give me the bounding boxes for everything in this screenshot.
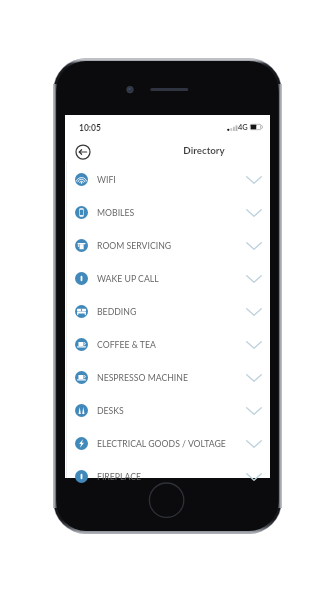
staticText: ROOM SERVICING: [97, 240, 172, 250]
button[interactable]: ROOM SERVICING: [65, 229, 270, 262]
staticText: ELECTRICAL GOODS / VOLTAGE: [97, 438, 226, 448]
button[interactable]: DESKS: [65, 394, 270, 427]
button[interactable]: Back: [73, 142, 92, 161]
staticText: WAKE UP CALL: [97, 273, 159, 283]
staticText: DESKS: [97, 405, 124, 415]
staticText: MOBILES: [97, 207, 135, 217]
staticText: FIREPLACE: [97, 471, 142, 481]
button[interactable]: BEDDING: [65, 295, 270, 328]
staticText: WIFI: [97, 174, 116, 184]
button[interactable]: WAKE UP CALL: [65, 262, 270, 295]
button[interactable]: ELECTRICAL GOODS / VOLTAGE: [65, 427, 270, 460]
staticText: COFFEE & TEA: [97, 339, 156, 349]
button[interactable]: MOBILES: [65, 196, 270, 229]
button[interactable]: FIREPLACE: [65, 460, 270, 493]
staticText: BEDDING: [97, 306, 137, 316]
staticText: 4G: [238, 123, 248, 132]
button[interactable]: NESPRESSO MACHINE: [65, 361, 270, 394]
staticText: NESPRESSO MACHINE: [97, 372, 188, 382]
button[interactable]: WIFI: [65, 163, 270, 196]
staticText: Directory: [164, 144, 244, 156]
button[interactable]: COFFEE & TEA: [65, 328, 270, 361]
staticText: 10:05: [79, 123, 101, 133]
